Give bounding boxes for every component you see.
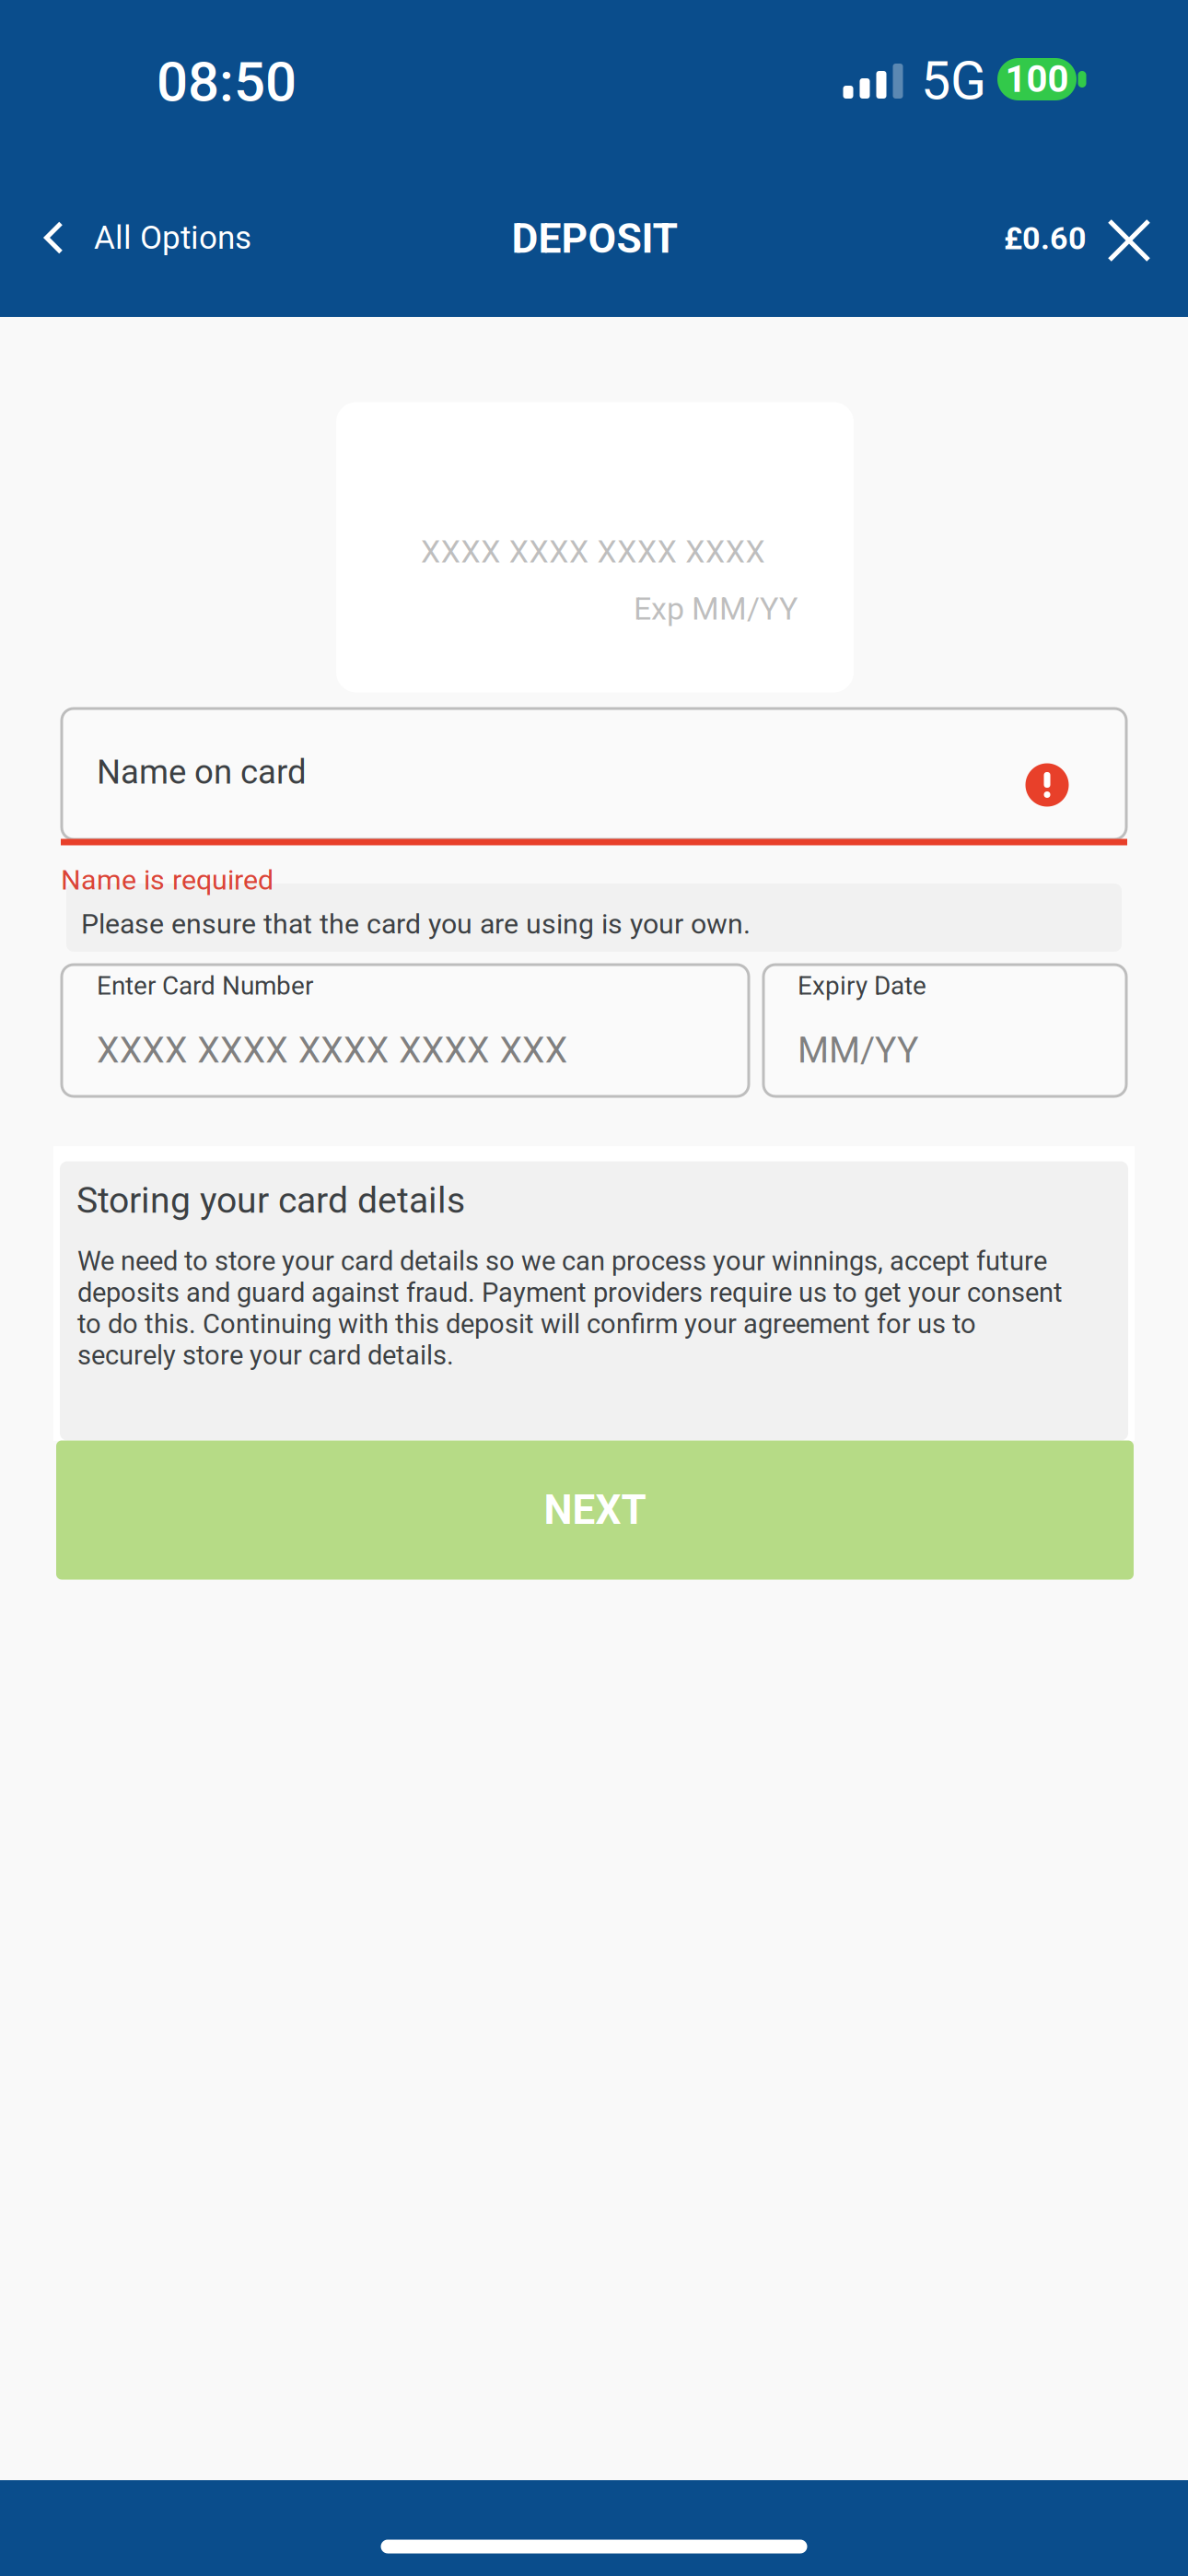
staticText: DEPOSIT	[512, 215, 678, 263]
button[interactable]: NEXT	[56, 1440, 1134, 1580]
staticText: XXXX XXXX XXXX XXXX	[421, 534, 765, 570]
staticText: XXXX XXXX XXXX XXXX XXX	[97, 1029, 567, 1071]
staticText: Please ensure that the card you are usin…	[81, 908, 751, 940]
button[interactable]: All Options	[0, 187, 313, 288]
staticText: Storing your card details	[76, 1179, 465, 1222]
staticText: 5G	[921, 50, 986, 112]
staticText: We need to store your card details so we…	[77, 1246, 1063, 1371]
staticText: Expiry Date	[798, 971, 926, 1001]
button[interactable]: Close	[1083, 190, 1175, 291]
staticText: £0.60	[1004, 220, 1087, 257]
staticText: 08:50	[157, 50, 297, 114]
staticText: Exp MM/YY	[634, 591, 798, 627]
staticText: All Options	[94, 219, 251, 257]
staticText: Name on card	[97, 752, 307, 792]
staticText: Name is required	[61, 863, 274, 896]
staticText: Enter Card Number	[97, 971, 313, 1001]
staticText: NEXT	[544, 1486, 646, 1534]
staticText: MM/YY	[798, 1029, 918, 1071]
staticText: 100	[1005, 58, 1069, 101]
